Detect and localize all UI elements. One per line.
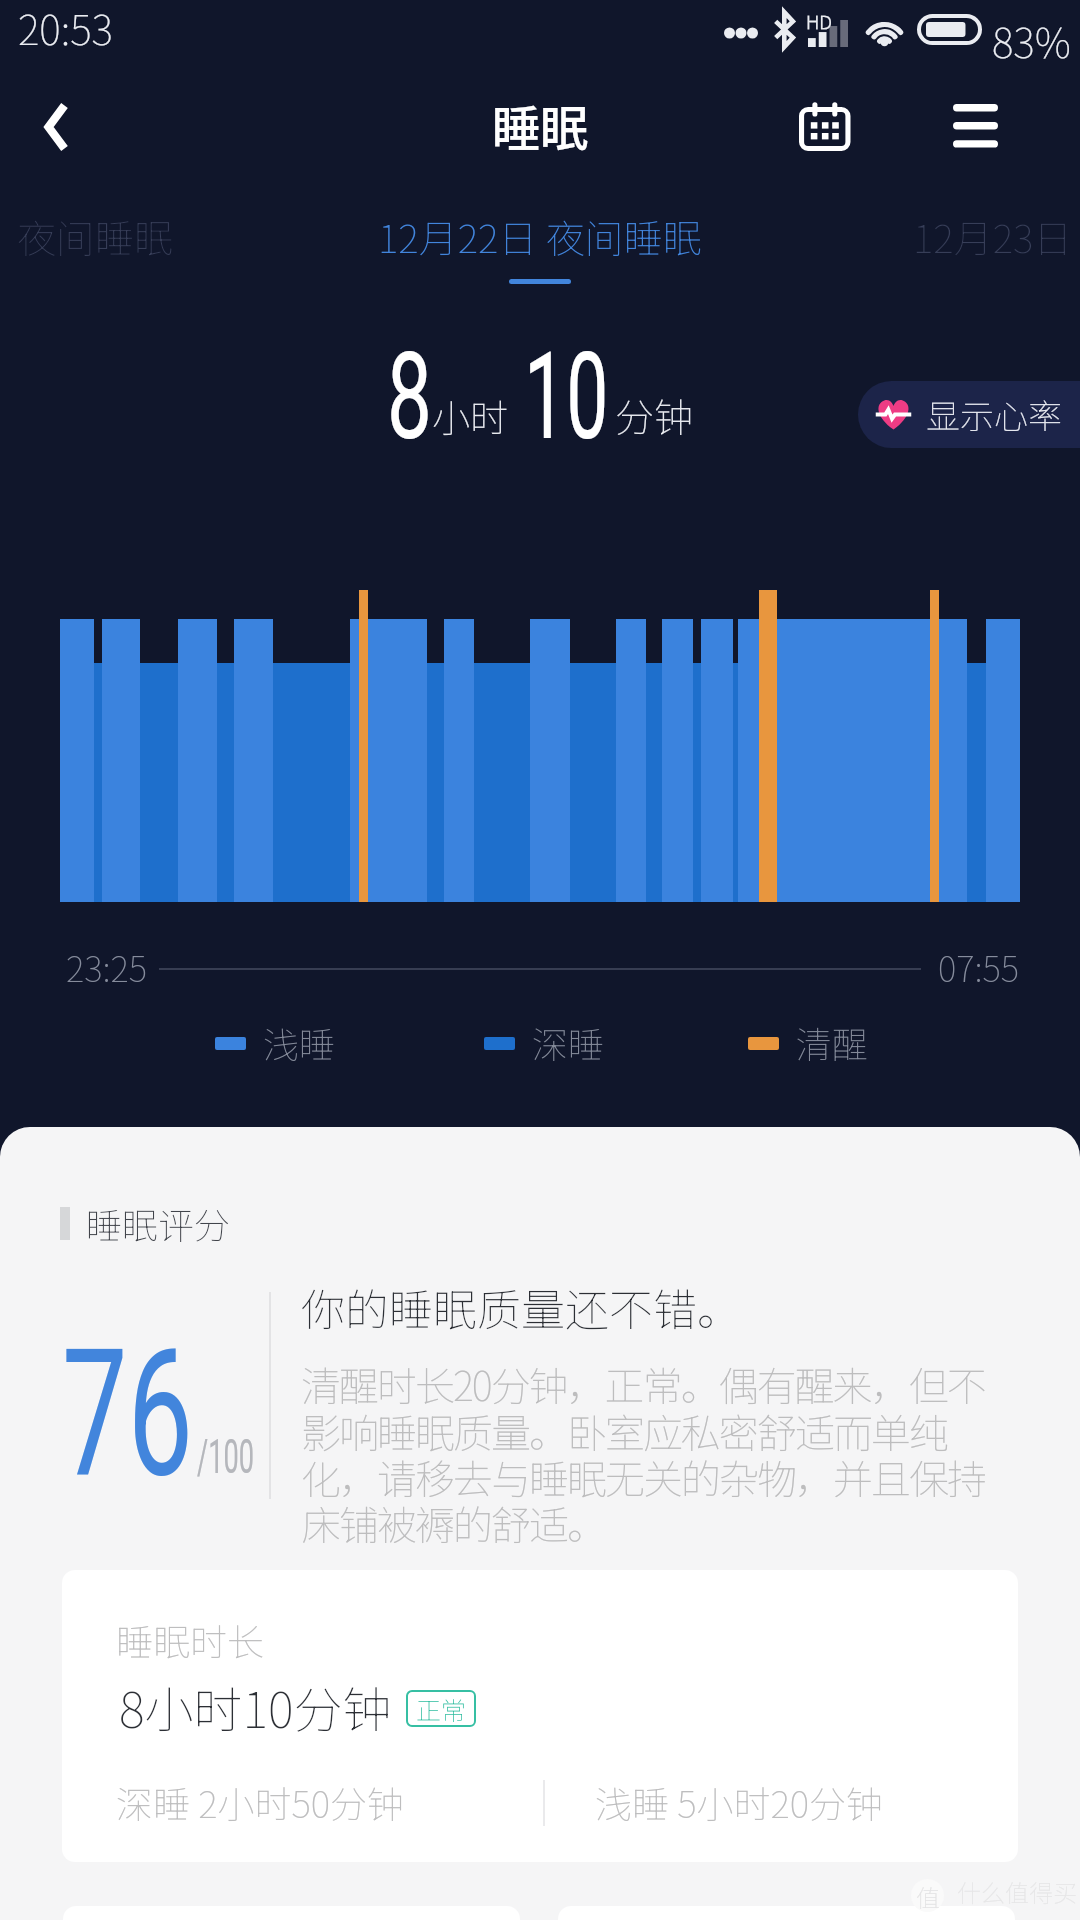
staticText: 20:53 [18,0,113,56]
staticText: 浅睡 5小时20分钟 [595,1775,883,1829]
staticText: 小时 [432,388,509,443]
staticText: 12月23日 [913,208,1073,264]
staticText: 浅睡 [263,1016,336,1068]
staticText: 清醒 [796,1016,869,1068]
button[interactable]: 显示心率 [858,381,1080,448]
button[interactable]: 清醒 [748,1010,869,1074]
staticText: 07:55 [938,941,1020,992]
button[interactable]: Calendar [779,81,871,173]
staticText: 你的睡眠质量还不错。 [301,1275,741,1339]
staticText: 显示心率 [926,390,1062,439]
staticText: 分钟 [615,387,694,443]
staticText: 23:25 [66,941,148,992]
button[interactable]: Back [10,81,102,173]
staticText: 12月22日 夜间睡眠 [378,208,702,264]
button[interactable]: 睡眠时长 [62,1570,1018,1862]
staticText: 清醒时长20分钟，正常。偶有醒来，但不影响睡眠质量。卧室应私密舒适而单纯化，请移… [301,1355,991,1551]
staticText: 睡眠 [492,90,589,160]
staticText: 睡眠时长 [116,1613,264,1667]
staticText: 8小时10分钟 [119,1671,392,1742]
staticText: 深睡 2小时50分钟 [116,1775,404,1829]
button[interactable]: 浅睡 [215,1010,336,1074]
button[interactable]: 深睡 [484,1010,605,1074]
staticText: 正常 [416,1691,467,1727]
button[interactable]: Menu [929,81,1021,173]
staticText: 夜间睡眠 [17,208,174,264]
staticText: HD [806,7,832,35]
staticText: 值 [916,1879,940,1912]
staticText: 83% [992,10,1071,69]
staticText: 8 [387,326,432,468]
staticText: 76 [62,1311,193,1517]
staticText: 睡眠评分 [86,1197,231,1249]
staticText: 10 [524,326,609,468]
staticText: /100 [197,1428,254,1484]
staticText: 什么值得买 [957,1874,1077,1909]
button[interactable]: 正常 [406,1690,476,1727]
staticText: 深睡 [532,1016,605,1068]
